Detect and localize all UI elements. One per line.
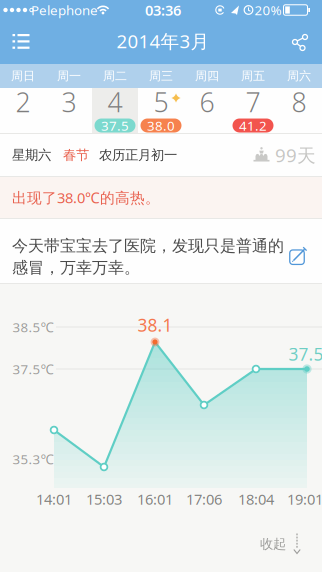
staticText: 37.5 xyxy=(288,342,322,365)
button[interactable]: 5 xyxy=(138,88,184,133)
staticText: Pelephone xyxy=(31,1,98,19)
staticText: 20% xyxy=(254,1,281,19)
staticText: 16:01 xyxy=(137,489,173,509)
staticText: 7 xyxy=(245,84,260,120)
staticText: 19:01 xyxy=(287,489,322,509)
staticText: 收起 xyxy=(260,536,286,552)
button[interactable]: 8 xyxy=(276,88,322,133)
button[interactable]: 7 xyxy=(230,88,276,133)
staticText: 春节 xyxy=(63,147,89,163)
staticText: 37.5℃ xyxy=(12,360,53,378)
staticText: 星期六 xyxy=(12,147,51,163)
button[interactable]: 6 xyxy=(184,88,230,133)
staticText: 14:01 xyxy=(36,489,72,509)
staticText: 99天 xyxy=(275,143,316,167)
staticText: 6 xyxy=(199,84,214,120)
staticText: 41.2 xyxy=(239,117,267,134)
staticText: 周四 xyxy=(195,69,219,83)
staticText: 周日 xyxy=(11,69,35,83)
button[interactable]: 2 xyxy=(0,88,46,133)
button[interactable]: Menu xyxy=(6,25,36,55)
staticText: 周五 xyxy=(241,69,265,83)
staticText: 出现了38.0℃的高热。 xyxy=(12,188,160,207)
staticText: 03:36 xyxy=(145,0,181,20)
button[interactable]: 收起 xyxy=(260,533,302,555)
staticText: 农历正月初一 xyxy=(99,147,177,163)
button[interactable]: 3 xyxy=(46,88,92,133)
staticText: 周六 xyxy=(287,69,311,83)
staticText: 周一 xyxy=(57,69,81,83)
staticText: 周三 xyxy=(149,69,173,83)
staticText: 35.3℃ xyxy=(12,450,53,468)
button[interactable]: 4 xyxy=(92,88,138,133)
staticText: 2 xyxy=(15,84,30,120)
staticText: 15:03 xyxy=(86,489,122,509)
button[interactable]: Edit xyxy=(289,245,309,265)
staticText: 8 xyxy=(291,84,306,120)
staticText: 37.5 xyxy=(101,117,129,134)
button[interactable]: Share xyxy=(287,28,313,54)
staticText: 18:04 xyxy=(238,489,274,509)
staticText: 4 xyxy=(107,84,122,120)
staticText: 2014年3月 xyxy=(116,29,209,53)
staticText: 38.5℃ xyxy=(12,318,53,336)
staticText: 周二 xyxy=(103,69,127,83)
staticText: 今天带宝宝去了医院，发现只是普通的 感冒，万幸万幸。 xyxy=(12,236,284,277)
staticText: 17:06 xyxy=(186,489,222,509)
staticText: 38.1 xyxy=(137,313,172,336)
staticText: 38.0 xyxy=(147,117,175,134)
staticText: 5 xyxy=(153,84,168,120)
staticText: 3 xyxy=(61,84,76,120)
